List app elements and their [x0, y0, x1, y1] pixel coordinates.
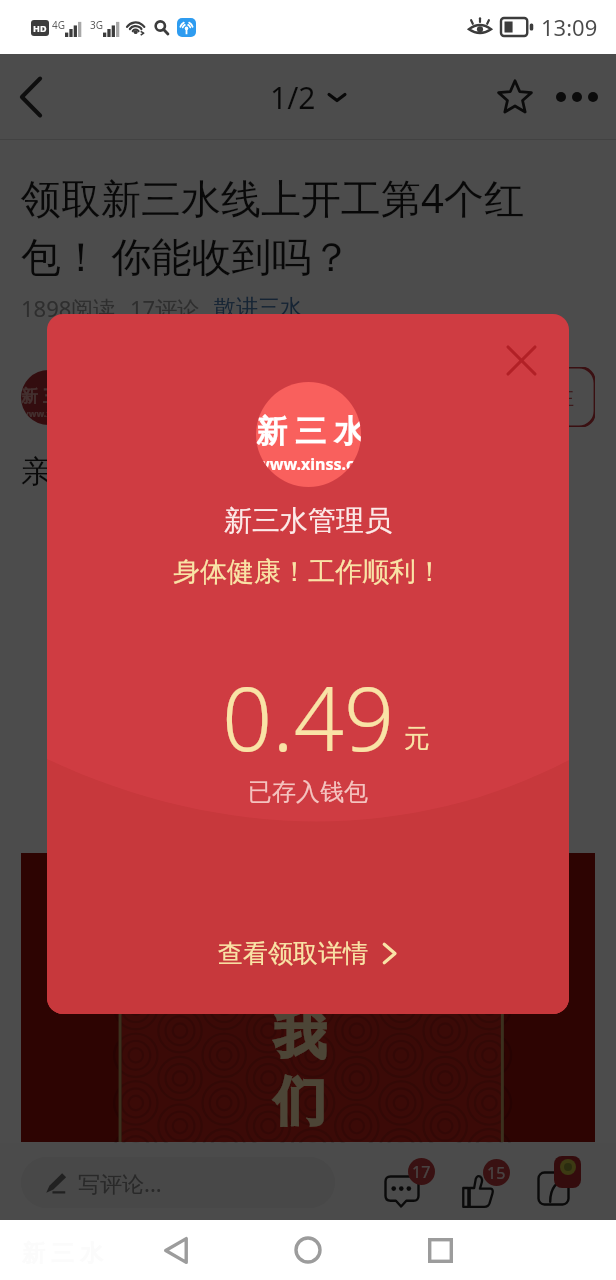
staticText: 们	[274, 1069, 326, 1135]
staticText: 3G	[90, 18, 103, 32]
staticText: 新三水管理员	[224, 503, 392, 538]
staticText: 已存入钱包	[248, 777, 368, 807]
staticText: 4G	[52, 18, 65, 32]
button[interactable]: Back	[0, 54, 62, 140]
staticText: 新 三 水	[256, 409, 361, 451]
staticText: 领取新三水线上开工第4个红 包！ 你能收到吗？	[21, 170, 616, 283]
staticText: 0.49	[222, 657, 395, 777]
button[interactable]: 写评论...	[21, 1157, 335, 1208]
staticText: 我	[274, 1003, 326, 1069]
staticText: 13:09	[541, 12, 598, 42]
staticText: HD	[33, 22, 47, 34]
button[interactable]: 关注	[511, 367, 595, 427]
button[interactable]: 查看领取详情	[200, 928, 417, 979]
staticText: www.xinss.cc	[256, 453, 361, 475]
button[interactable]: More options	[544, 62, 610, 132]
button[interactable]: Home	[278, 1220, 338, 1280]
staticText: 1898阅读	[21, 293, 116, 323]
button[interactable]: Share	[530, 1153, 592, 1209]
button[interactable]: Comments	[378, 1153, 440, 1209]
button[interactable]: Recents	[410, 1220, 470, 1280]
staticText: www.xinss.cc	[21, 407, 76, 419]
staticText: 查看领取详情	[218, 938, 368, 969]
button[interactable]: Back	[146, 1220, 206, 1280]
staticText: 15	[487, 1162, 506, 1184]
button[interactable]: Like	[455, 1153, 517, 1209]
staticText: 散讲三水	[214, 294, 302, 322]
staticText: 亲爱的粉丝朋友们：	[21, 452, 300, 491]
staticText: 17评论	[130, 293, 200, 323]
staticText: 新 三 水	[21, 384, 76, 407]
staticText: 写评论...	[78, 1168, 162, 1198]
button[interactable]: Close	[495, 334, 547, 386]
staticText: 关注	[532, 384, 574, 410]
button[interactable]: 1/2	[256, 69, 360, 126]
staticText: 元	[404, 722, 430, 755]
staticText: 身体健康！工作顺利！	[173, 555, 443, 589]
button[interactable]: Favorite	[486, 62, 544, 132]
staticText: 17	[412, 1161, 431, 1183]
staticText: 1/2	[270, 77, 316, 118]
